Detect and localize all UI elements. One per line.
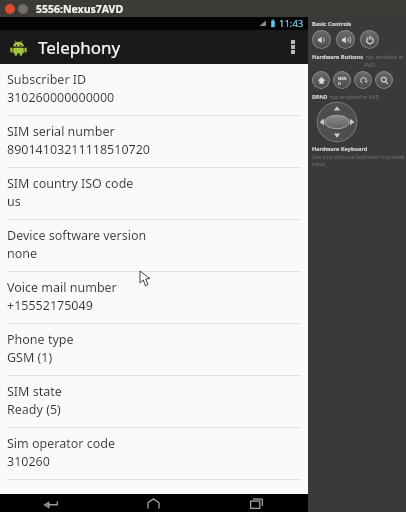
staticText: Use your physical keyboard to provide in… (312, 153, 406, 167)
button[interactable]: Minimize (18, 4, 28, 14)
staticText: 11:43 (279, 17, 304, 30)
staticText: Subscriber ID (7, 71, 87, 88)
staticText: Voice mail number (7, 279, 117, 296)
staticText: Basic Controls (312, 20, 352, 28)
button[interactable]: Device software version (0, 220, 308, 271)
staticText: us (7, 193, 21, 210)
button[interactable]: DPAD (312, 103, 362, 141)
button[interactable]: Back (0, 494, 102, 512)
button[interactable]: Home (102, 494, 205, 512)
staticText: not enabled in AVD (328, 93, 380, 101)
button[interactable]: Power (360, 30, 379, 49)
staticText: 310260000000000 (7, 89, 115, 106)
button[interactable]: Phone type (0, 324, 308, 375)
button[interactable]: Sim operator code (0, 428, 308, 479)
button[interactable]: Subscriber ID (0, 64, 308, 115)
staticText: 89014103211118510720 (7, 141, 151, 158)
staticText: MENU (338, 76, 347, 85)
staticText: Hardware Keyboard (312, 145, 368, 153)
staticText: Device software version (7, 227, 147, 244)
staticText: GSM (1) (7, 349, 53, 366)
button[interactable]: Volume up (336, 30, 355, 49)
button[interactable]: Recent apps (205, 494, 308, 512)
staticText: Telephony (38, 36, 121, 59)
button[interactable]: SIM state (0, 376, 308, 427)
staticText: SIM country ISO code (7, 175, 134, 192)
staticText: Sim operator code (7, 435, 116, 452)
staticText: Phone type (7, 331, 74, 348)
staticText: none (7, 245, 38, 262)
staticText: DPAD (312, 93, 328, 101)
button[interactable]: Menu (333, 71, 351, 89)
button[interactable]: Home (312, 71, 330, 89)
staticText: 5556:Nexus7AVD (36, 2, 124, 16)
button[interactable]: SIM serial number (0, 116, 308, 167)
staticText: 310260 (7, 453, 50, 470)
button[interactable]: Voice mail number (0, 272, 308, 323)
button[interactable]: Close (5, 4, 15, 14)
button[interactable]: More options (280, 30, 306, 64)
staticText: not enabled in AVD (364, 53, 406, 69)
staticText: SIM serial number (7, 123, 115, 140)
staticText: Hardware Buttons (312, 53, 364, 61)
staticText: Ready (5) (7, 401, 61, 418)
button[interactable]: Search (375, 71, 393, 89)
button[interactable]: SIM country ISO code (0, 168, 308, 219)
button[interactable]: Back (354, 71, 372, 89)
staticText: SIM state (7, 383, 62, 400)
button[interactable]: Volume down (312, 30, 331, 49)
staticText: +15552175049 (7, 297, 93, 314)
